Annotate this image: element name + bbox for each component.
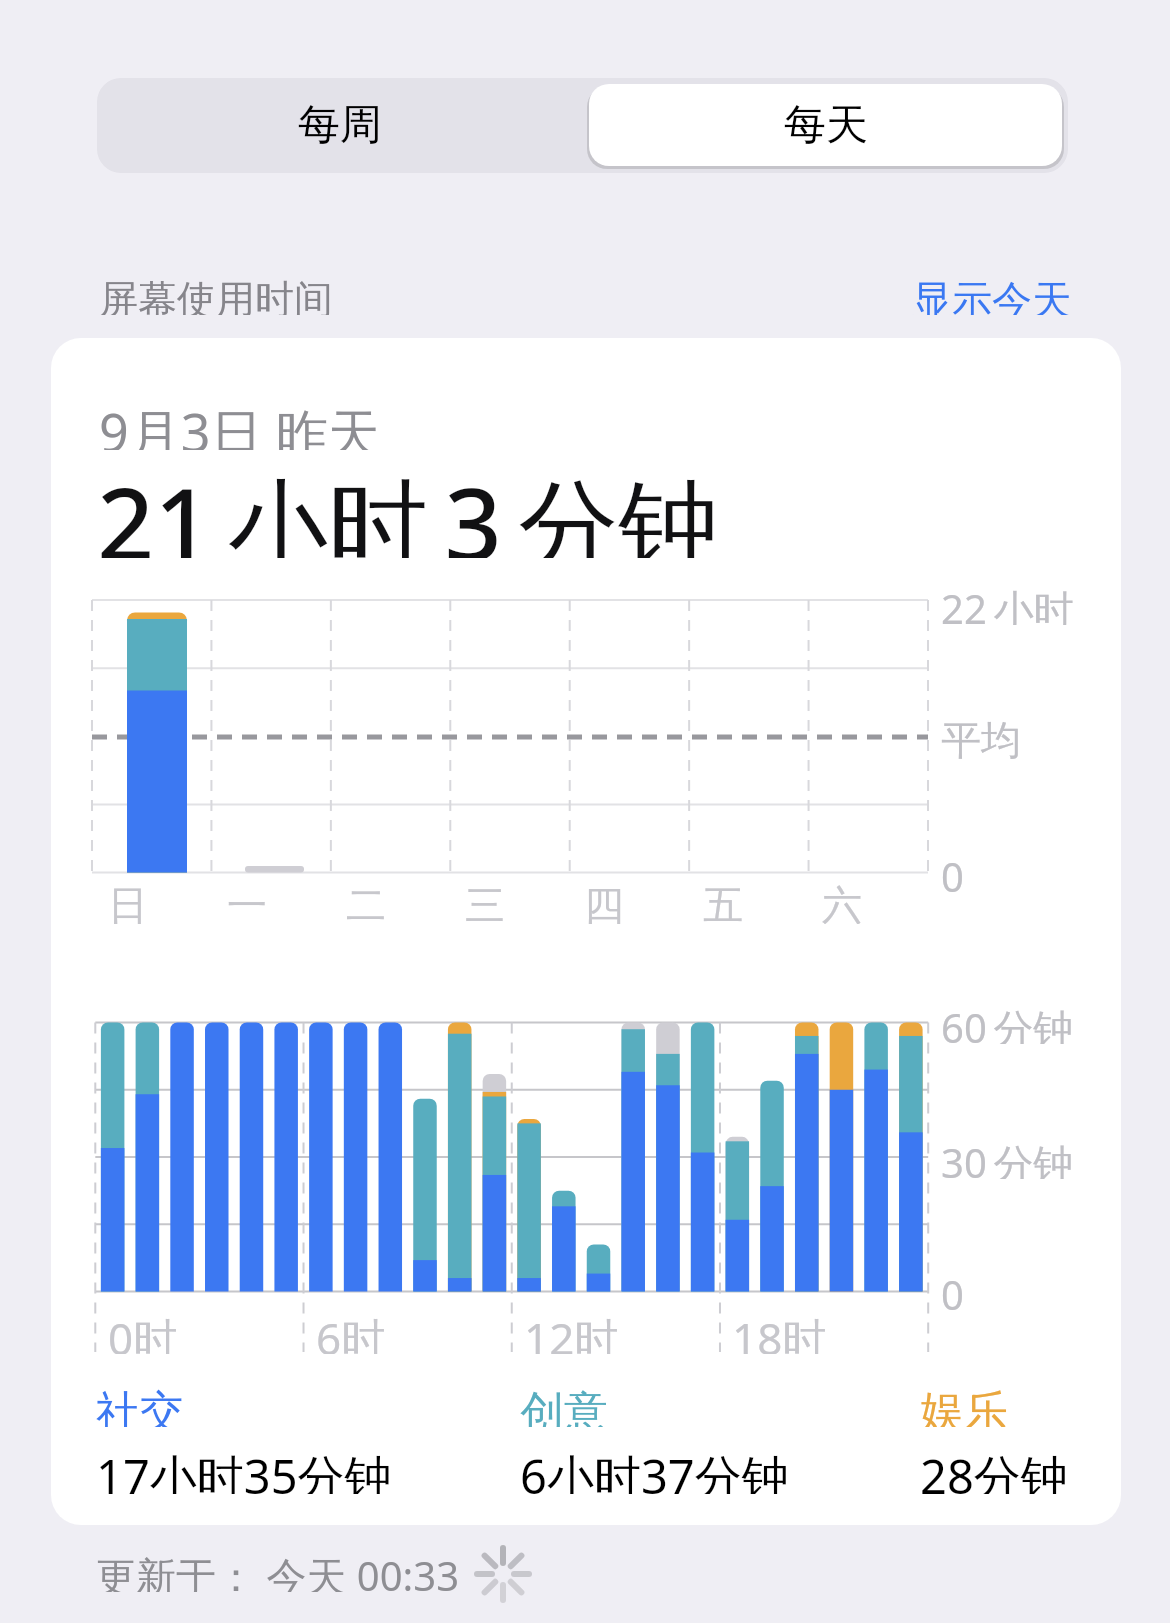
staticText: 18时	[732, 1308, 827, 1354]
staticText: 28分钟	[920, 1444, 1068, 1494]
staticText: 平均	[941, 715, 1021, 759]
staticText: 娱乐	[920, 1385, 1008, 1427]
staticText: 9月3日 昨天	[99, 396, 381, 450]
staticText: 0时	[108, 1308, 178, 1354]
staticText: 30 分钟	[941, 1135, 1074, 1179]
staticText: 二	[346, 880, 386, 924]
button[interactable]	[589, 84, 1062, 166]
staticText: 每周	[298, 99, 382, 152]
button[interactable]	[97, 78, 583, 173]
staticText: 0	[941, 849, 964, 893]
staticText: 创意	[520, 1385, 608, 1427]
button[interactable]: 显示今天	[672, 275, 1072, 315]
staticText: 四	[584, 880, 624, 924]
staticText: 12时	[524, 1308, 619, 1354]
staticText: 6小时37分钟	[520, 1444, 789, 1494]
staticText: 屏幕使用时间	[99, 275, 333, 315]
staticText: 显示今天	[912, 275, 1072, 315]
staticText: 0	[941, 1267, 964, 1311]
staticText: 日	[108, 880, 148, 924]
staticText: 60 分钟	[941, 1000, 1074, 1044]
staticText: 22 小时	[941, 581, 1074, 625]
staticText: 21 小时 3 分钟	[97, 454, 719, 558]
staticText: 六	[822, 880, 862, 924]
staticText: 社交	[96, 1385, 184, 1427]
staticText: 三	[465, 880, 505, 924]
staticText: 更新于： 今天 00:33	[96, 1548, 460, 1592]
staticText: 每天	[784, 99, 868, 152]
staticText: 6时	[316, 1308, 386, 1354]
staticText: 五	[703, 880, 743, 924]
staticText: 17小时35分钟	[96, 1444, 392, 1494]
staticText: 一	[227, 880, 267, 924]
